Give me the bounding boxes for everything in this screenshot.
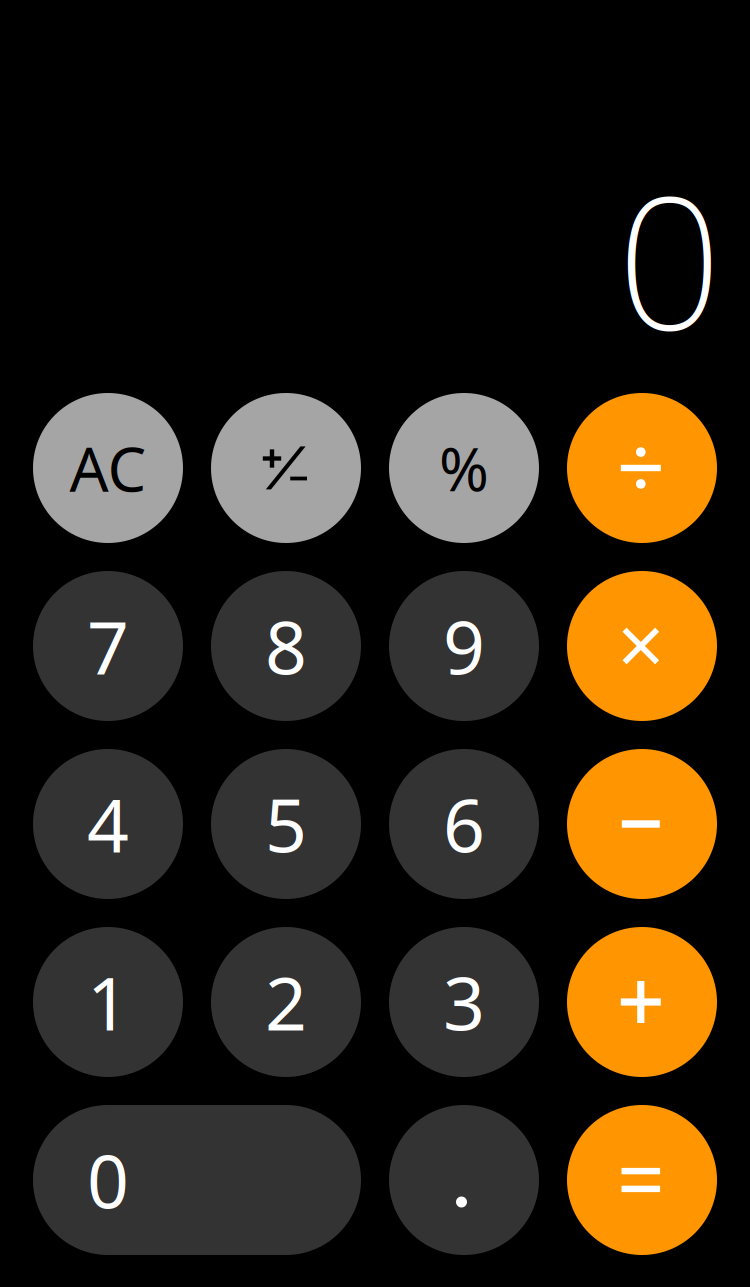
staticText: 6 <box>443 775 485 873</box>
button[interactable]: 1 <box>33 927 183 1077</box>
button[interactable]: Decimal point <box>389 1105 539 1255</box>
button[interactable]: Divide <box>567 393 717 543</box>
button[interactable]: 0 <box>33 1105 361 1255</box>
staticText: 9 <box>443 597 485 695</box>
button[interactable]: 9 <box>389 571 539 721</box>
button[interactable]: 5 <box>211 749 361 899</box>
button[interactable]: % <box>389 393 539 543</box>
button[interactable]: Multiply <box>567 571 717 721</box>
staticText: 8 <box>265 597 307 695</box>
button[interactable]: 8 <box>211 571 361 721</box>
staticText: 2 <box>265 953 307 1051</box>
staticText: 0 <box>87 1131 129 1229</box>
button[interactable]: Plus <box>567 927 717 1077</box>
button[interactable]: Plus Minus <box>211 393 361 543</box>
button[interactable]: 3 <box>389 927 539 1077</box>
staticText: 5 <box>265 775 307 873</box>
button[interactable]: 2 <box>211 927 361 1077</box>
staticText: 0 <box>617 136 722 380</box>
button[interactable]: AC <box>33 393 183 543</box>
button[interactable]: 4 <box>33 749 183 899</box>
staticText: 7 <box>87 597 129 695</box>
button[interactable]: Equals <box>567 1105 717 1255</box>
staticText: AC <box>69 427 146 509</box>
staticText: 1 <box>87 953 129 1051</box>
staticText: 4 <box>87 775 129 873</box>
staticText: 3 <box>443 953 485 1051</box>
staticText: % <box>439 428 489 508</box>
button[interactable]: Minus <box>567 749 717 899</box>
button[interactable]: 6 <box>389 749 539 899</box>
button[interactable]: 7 <box>33 571 183 721</box>
